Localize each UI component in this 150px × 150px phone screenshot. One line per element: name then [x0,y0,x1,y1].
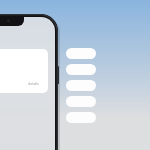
button[interactable]: Row four [66,96,96,107]
staticText: details [28,81,39,86]
button[interactable]: Row five [66,112,96,123]
button[interactable]: Booking [0,49,48,93]
button[interactable]: Row one [66,48,96,59]
button[interactable]: Row three [66,80,96,91]
button[interactable]: Phone mockup [0,14,58,150]
button[interactable]: Row two [66,64,96,75]
